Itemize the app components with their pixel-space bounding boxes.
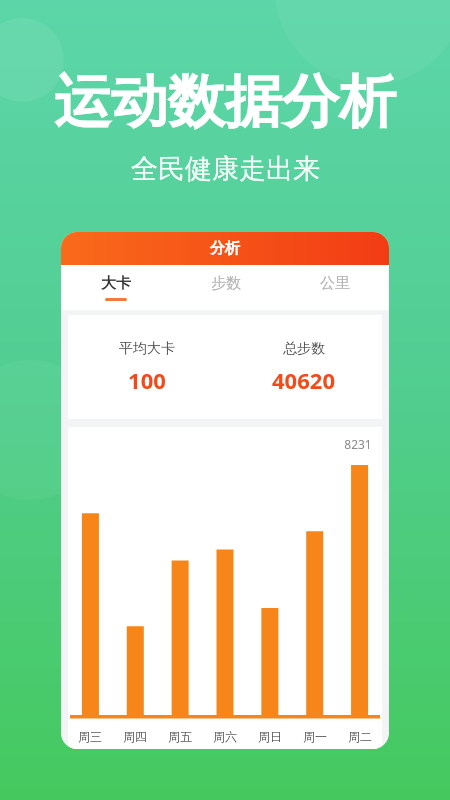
- staticText: 周二: [348, 729, 372, 744]
- staticText: 8231: [344, 436, 372, 452]
- staticText: 100: [128, 365, 166, 395]
- staticText: 周一: [303, 729, 327, 744]
- staticText: 公里: [320, 274, 350, 293]
- staticText: 运动数据分析: [54, 66, 396, 138]
- staticText: 平均大卡: [119, 340, 175, 358]
- staticText: 周四: [123, 729, 147, 744]
- staticText: 总步数: [283, 340, 325, 358]
- staticText: 分析: [210, 239, 240, 258]
- staticText: 大卡: [101, 274, 131, 293]
- staticText: 40620: [272, 365, 335, 395]
- button[interactable]: 公里: [280, 265, 389, 298]
- button[interactable]: 大卡: [61, 265, 171, 301]
- staticText: 周三: [78, 729, 102, 744]
- staticText: 全民健康走出来: [131, 152, 320, 186]
- button[interactable]: 步数: [171, 265, 280, 298]
- staticText: 周日: [258, 729, 282, 744]
- staticText: 周五: [168, 729, 192, 744]
- staticText: 步数: [211, 274, 241, 293]
- staticText: 周六: [213, 729, 237, 744]
